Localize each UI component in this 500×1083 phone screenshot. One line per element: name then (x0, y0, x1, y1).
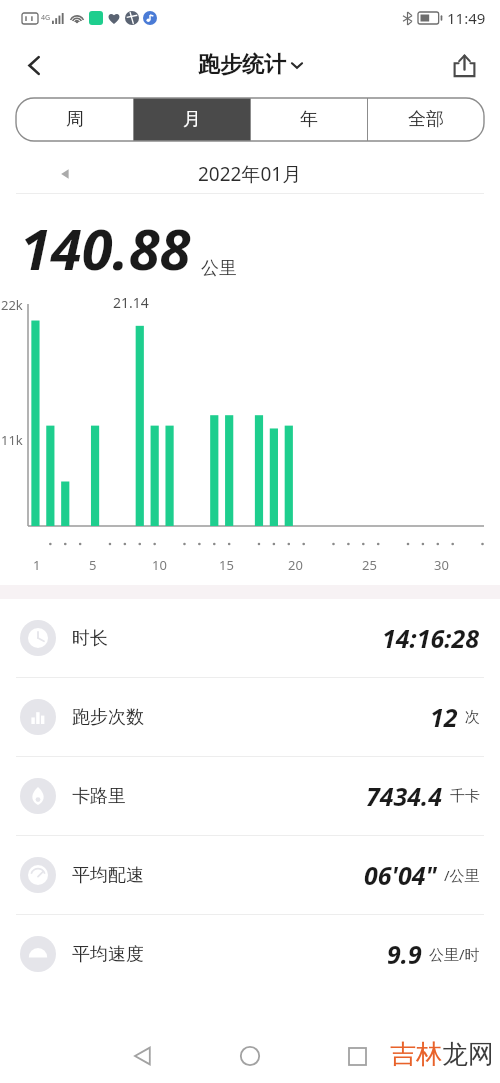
button[interactable]: Back (122, 1035, 164, 1077)
staticText: 月 (183, 108, 201, 131)
staticText: 跑步次数 (72, 706, 144, 729)
button[interactable]: 跑步统计 (198, 51, 303, 79)
staticText: 12 (430, 700, 458, 734)
staticText: /公里 (444, 865, 480, 885)
staticText: 140.88 (20, 210, 191, 286)
staticText: 15 (219, 556, 234, 574)
button[interactable]: 平均速度 (0, 915, 500, 993)
staticText: 公里/时 (429, 944, 480, 964)
button[interactable]: Recents (336, 1035, 378, 1077)
staticText: 全部 (408, 108, 444, 131)
staticText: 千卡 (450, 787, 480, 806)
staticText: 龙网 (442, 1038, 494, 1071)
staticText: 公里 (201, 257, 237, 280)
staticText: 9.9 (387, 937, 422, 971)
staticText: 25 (362, 556, 377, 574)
button[interactable]: Share (440, 41, 488, 89)
button[interactable]: 平均配速 (0, 836, 500, 914)
staticText: 卡路里 (72, 785, 126, 808)
staticText: 30 (434, 556, 449, 574)
button[interactable]: 跑步次数 (0, 678, 500, 756)
button[interactable]: 年 (251, 98, 367, 141)
button[interactable]: 时长 (0, 599, 500, 677)
button[interactable]: Home (229, 1035, 271, 1077)
staticText: 平均速度 (72, 943, 144, 966)
staticText: 06'04" (364, 858, 437, 892)
staticText: 1 (33, 556, 41, 574)
staticText: 10 (152, 556, 167, 574)
staticText: 次 (465, 708, 480, 727)
staticText: 11:49 (447, 8, 486, 28)
staticText: 11k (1, 431, 23, 449)
button[interactable]: Back (10, 41, 58, 89)
staticText: 平均配速 (72, 864, 144, 887)
staticText: 7434.4 (366, 779, 443, 813)
staticText: 周 (66, 108, 84, 131)
staticText: 吉林 (390, 1038, 442, 1071)
staticText: 22k (1, 296, 23, 314)
staticText: 时长 (72, 627, 108, 650)
staticText: 跑步统计 (198, 51, 286, 79)
staticText: 14:16:28 (382, 621, 480, 655)
staticText: 21.14 (113, 293, 149, 312)
button[interactable]: 周 (16, 98, 133, 141)
staticText: 20 (288, 556, 303, 574)
staticText: 年 (300, 108, 318, 131)
button[interactable]: Previous month (48, 157, 82, 191)
staticText: 2022年01月 (198, 161, 302, 187)
button[interactable]: 卡路里 (0, 757, 500, 835)
staticText: 5 (89, 556, 97, 574)
button[interactable]: 全部 (368, 98, 484, 141)
staticText: 4G (41, 13, 51, 23)
button[interactable]: 月 (134, 98, 250, 141)
